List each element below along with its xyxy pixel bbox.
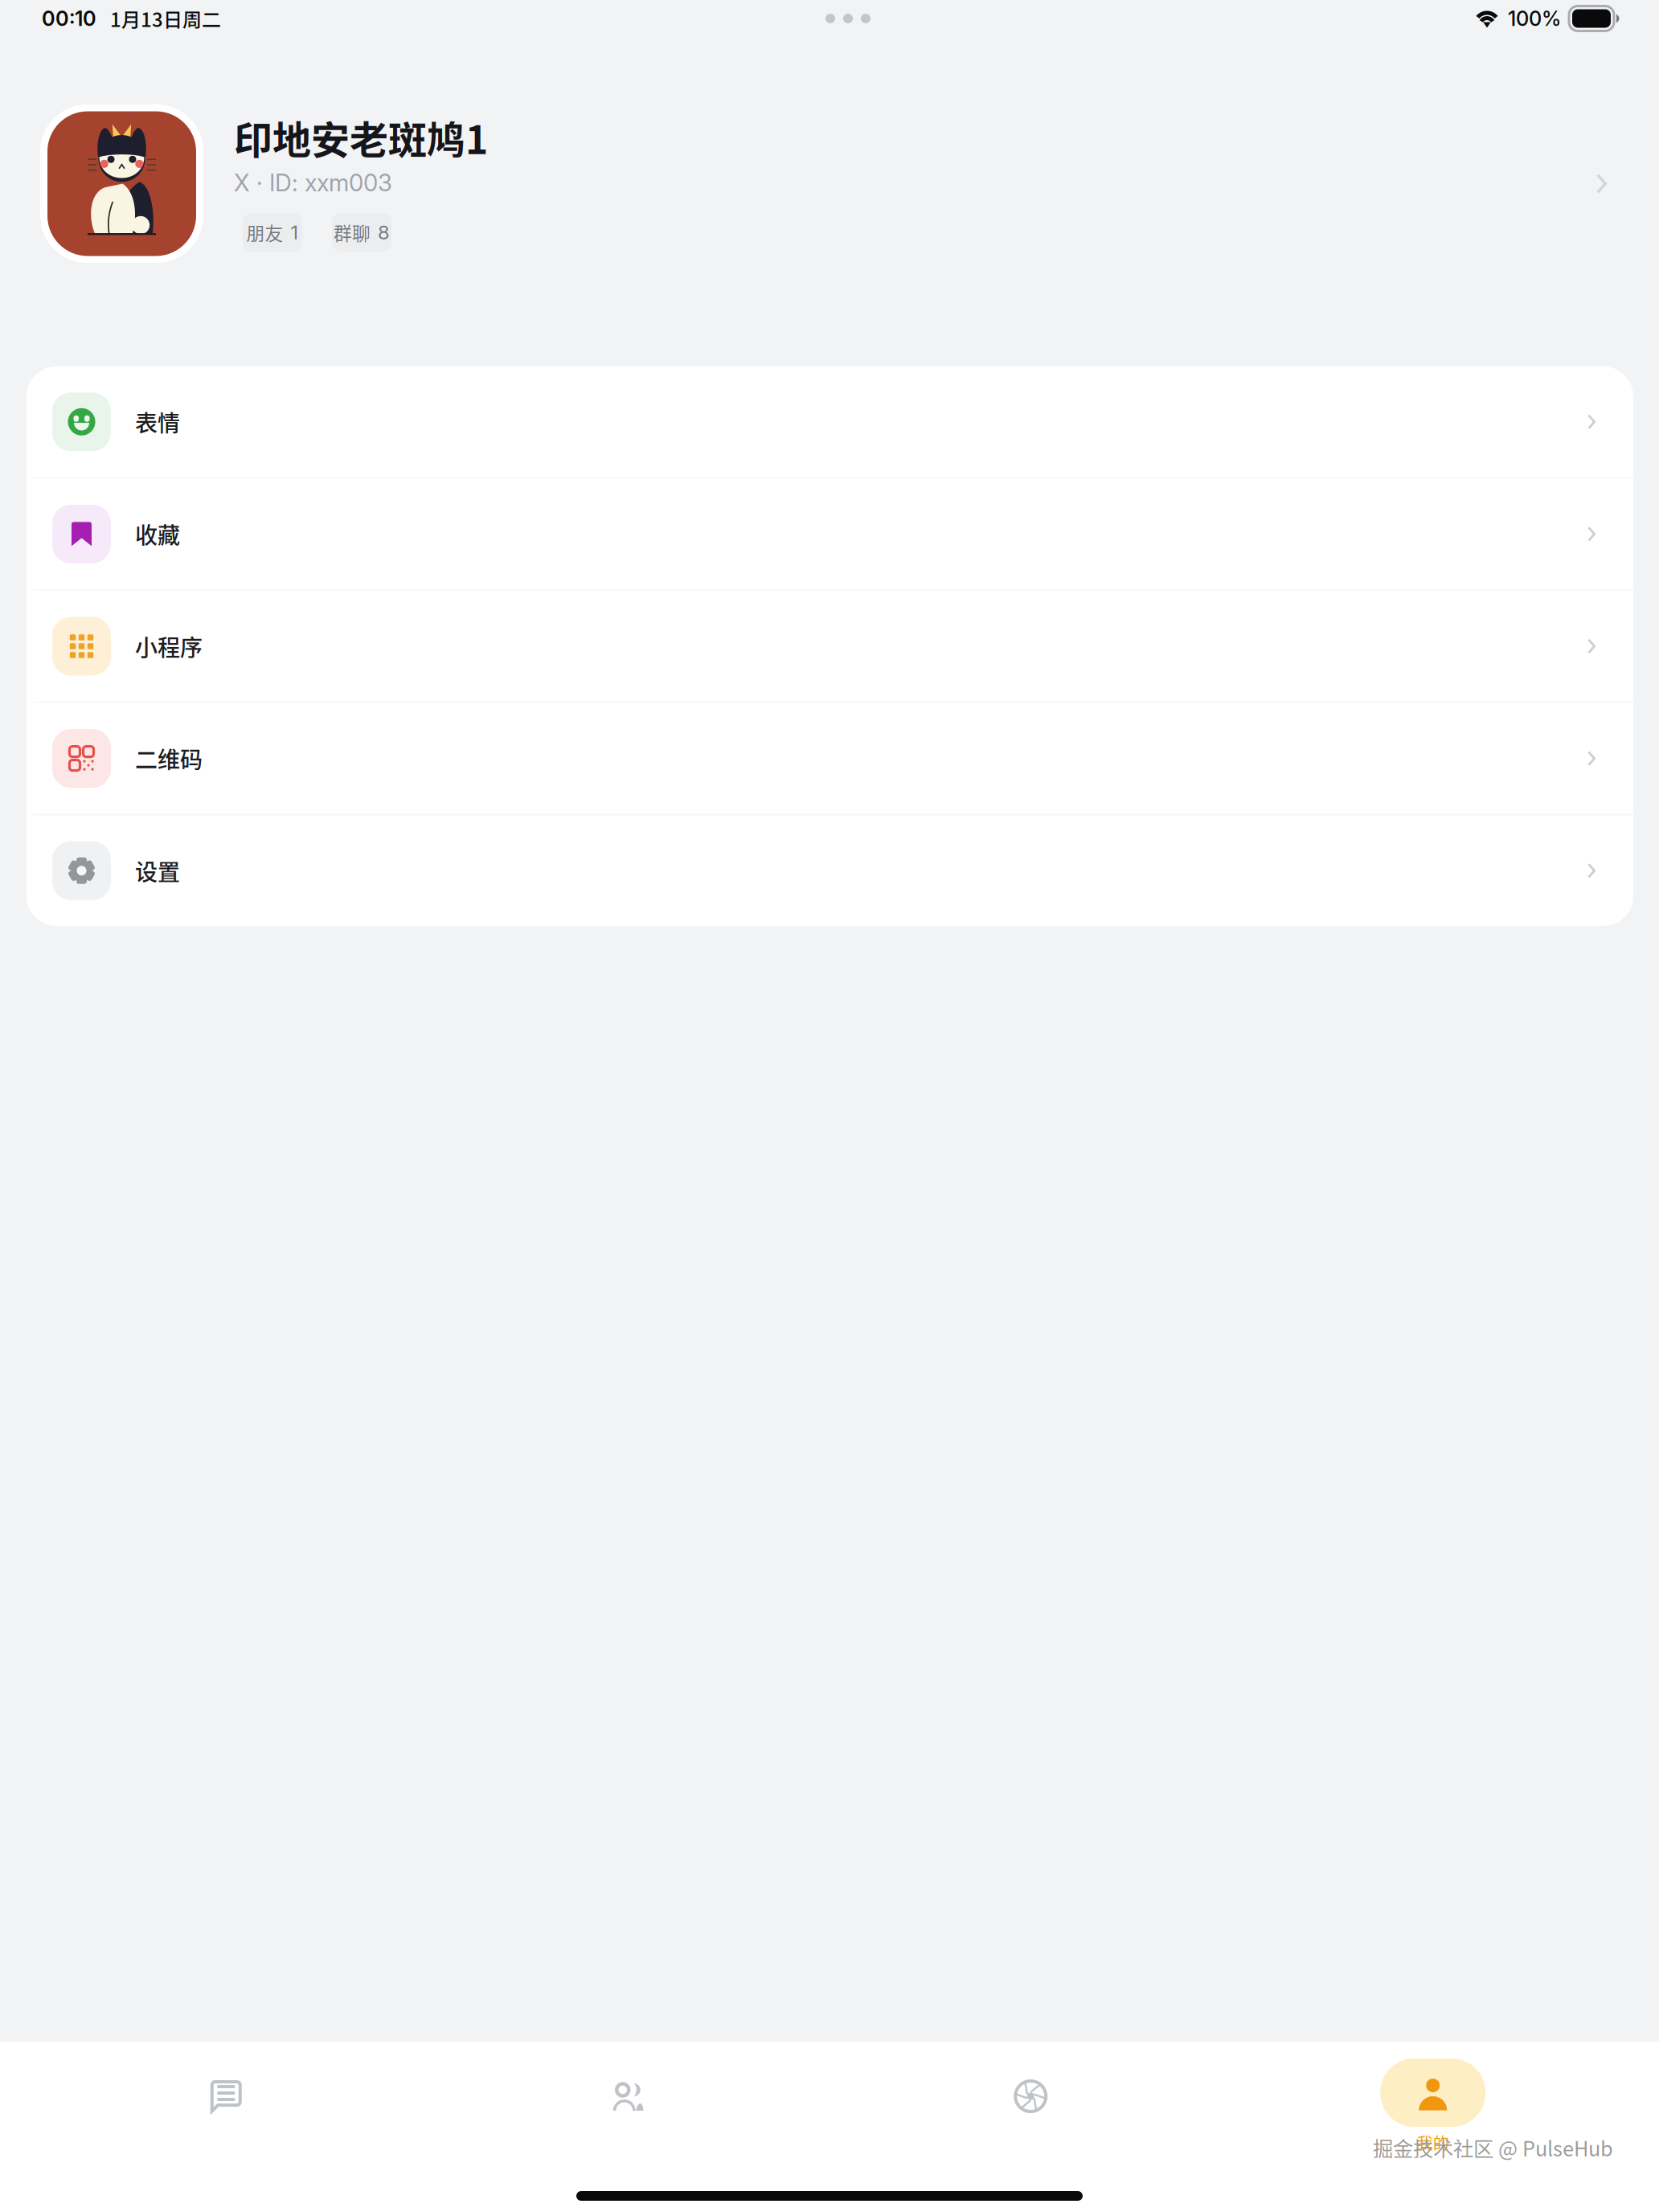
- staticText: 设置: [135, 854, 180, 887]
- staticText: 我的: [1417, 2131, 1449, 2154]
- button[interactable]: 群聊: [332, 213, 391, 252]
- staticText: 二维码: [135, 742, 203, 775]
- staticText: 掘金技术社区 @ PulseHub: [1373, 2133, 1613, 2162]
- button[interactable]: 我的: [1232, 2040, 1634, 2153]
- button[interactable]: 二维码: [27, 703, 1633, 814]
- button[interactable]: 朋友: [243, 213, 302, 252]
- button[interactable]: 设置: [27, 815, 1633, 926]
- staticText: 小程序: [135, 630, 203, 662]
- button[interactable]: 消息: [25, 2040, 427, 2153]
- staticText: 8: [378, 221, 390, 244]
- staticText: 100%: [1508, 6, 1561, 31]
- staticText: 1: [291, 221, 299, 244]
- staticText: 印地安老斑鸠1: [234, 109, 488, 165]
- button[interactable]: 收藏: [27, 479, 1633, 589]
- button[interactable]: 表情: [27, 367, 1633, 477]
- staticText: 收藏: [135, 518, 180, 550]
- staticText: 群聊: [334, 219, 371, 245]
- button[interactable]: 通讯录: [427, 2040, 829, 2153]
- staticText: 1月13日周二: [110, 5, 221, 32]
- staticText: 00:10: [42, 6, 96, 31]
- button[interactable]: 印地安老斑鸠1: [0, 104, 1659, 263]
- staticText: 朋友: [246, 219, 283, 245]
- button[interactable]: 小程序: [27, 591, 1633, 702]
- button[interactable]: 发现: [829, 2040, 1232, 2153]
- staticText: X · ID: xxm003: [234, 168, 392, 197]
- staticText: 表情: [135, 406, 180, 438]
